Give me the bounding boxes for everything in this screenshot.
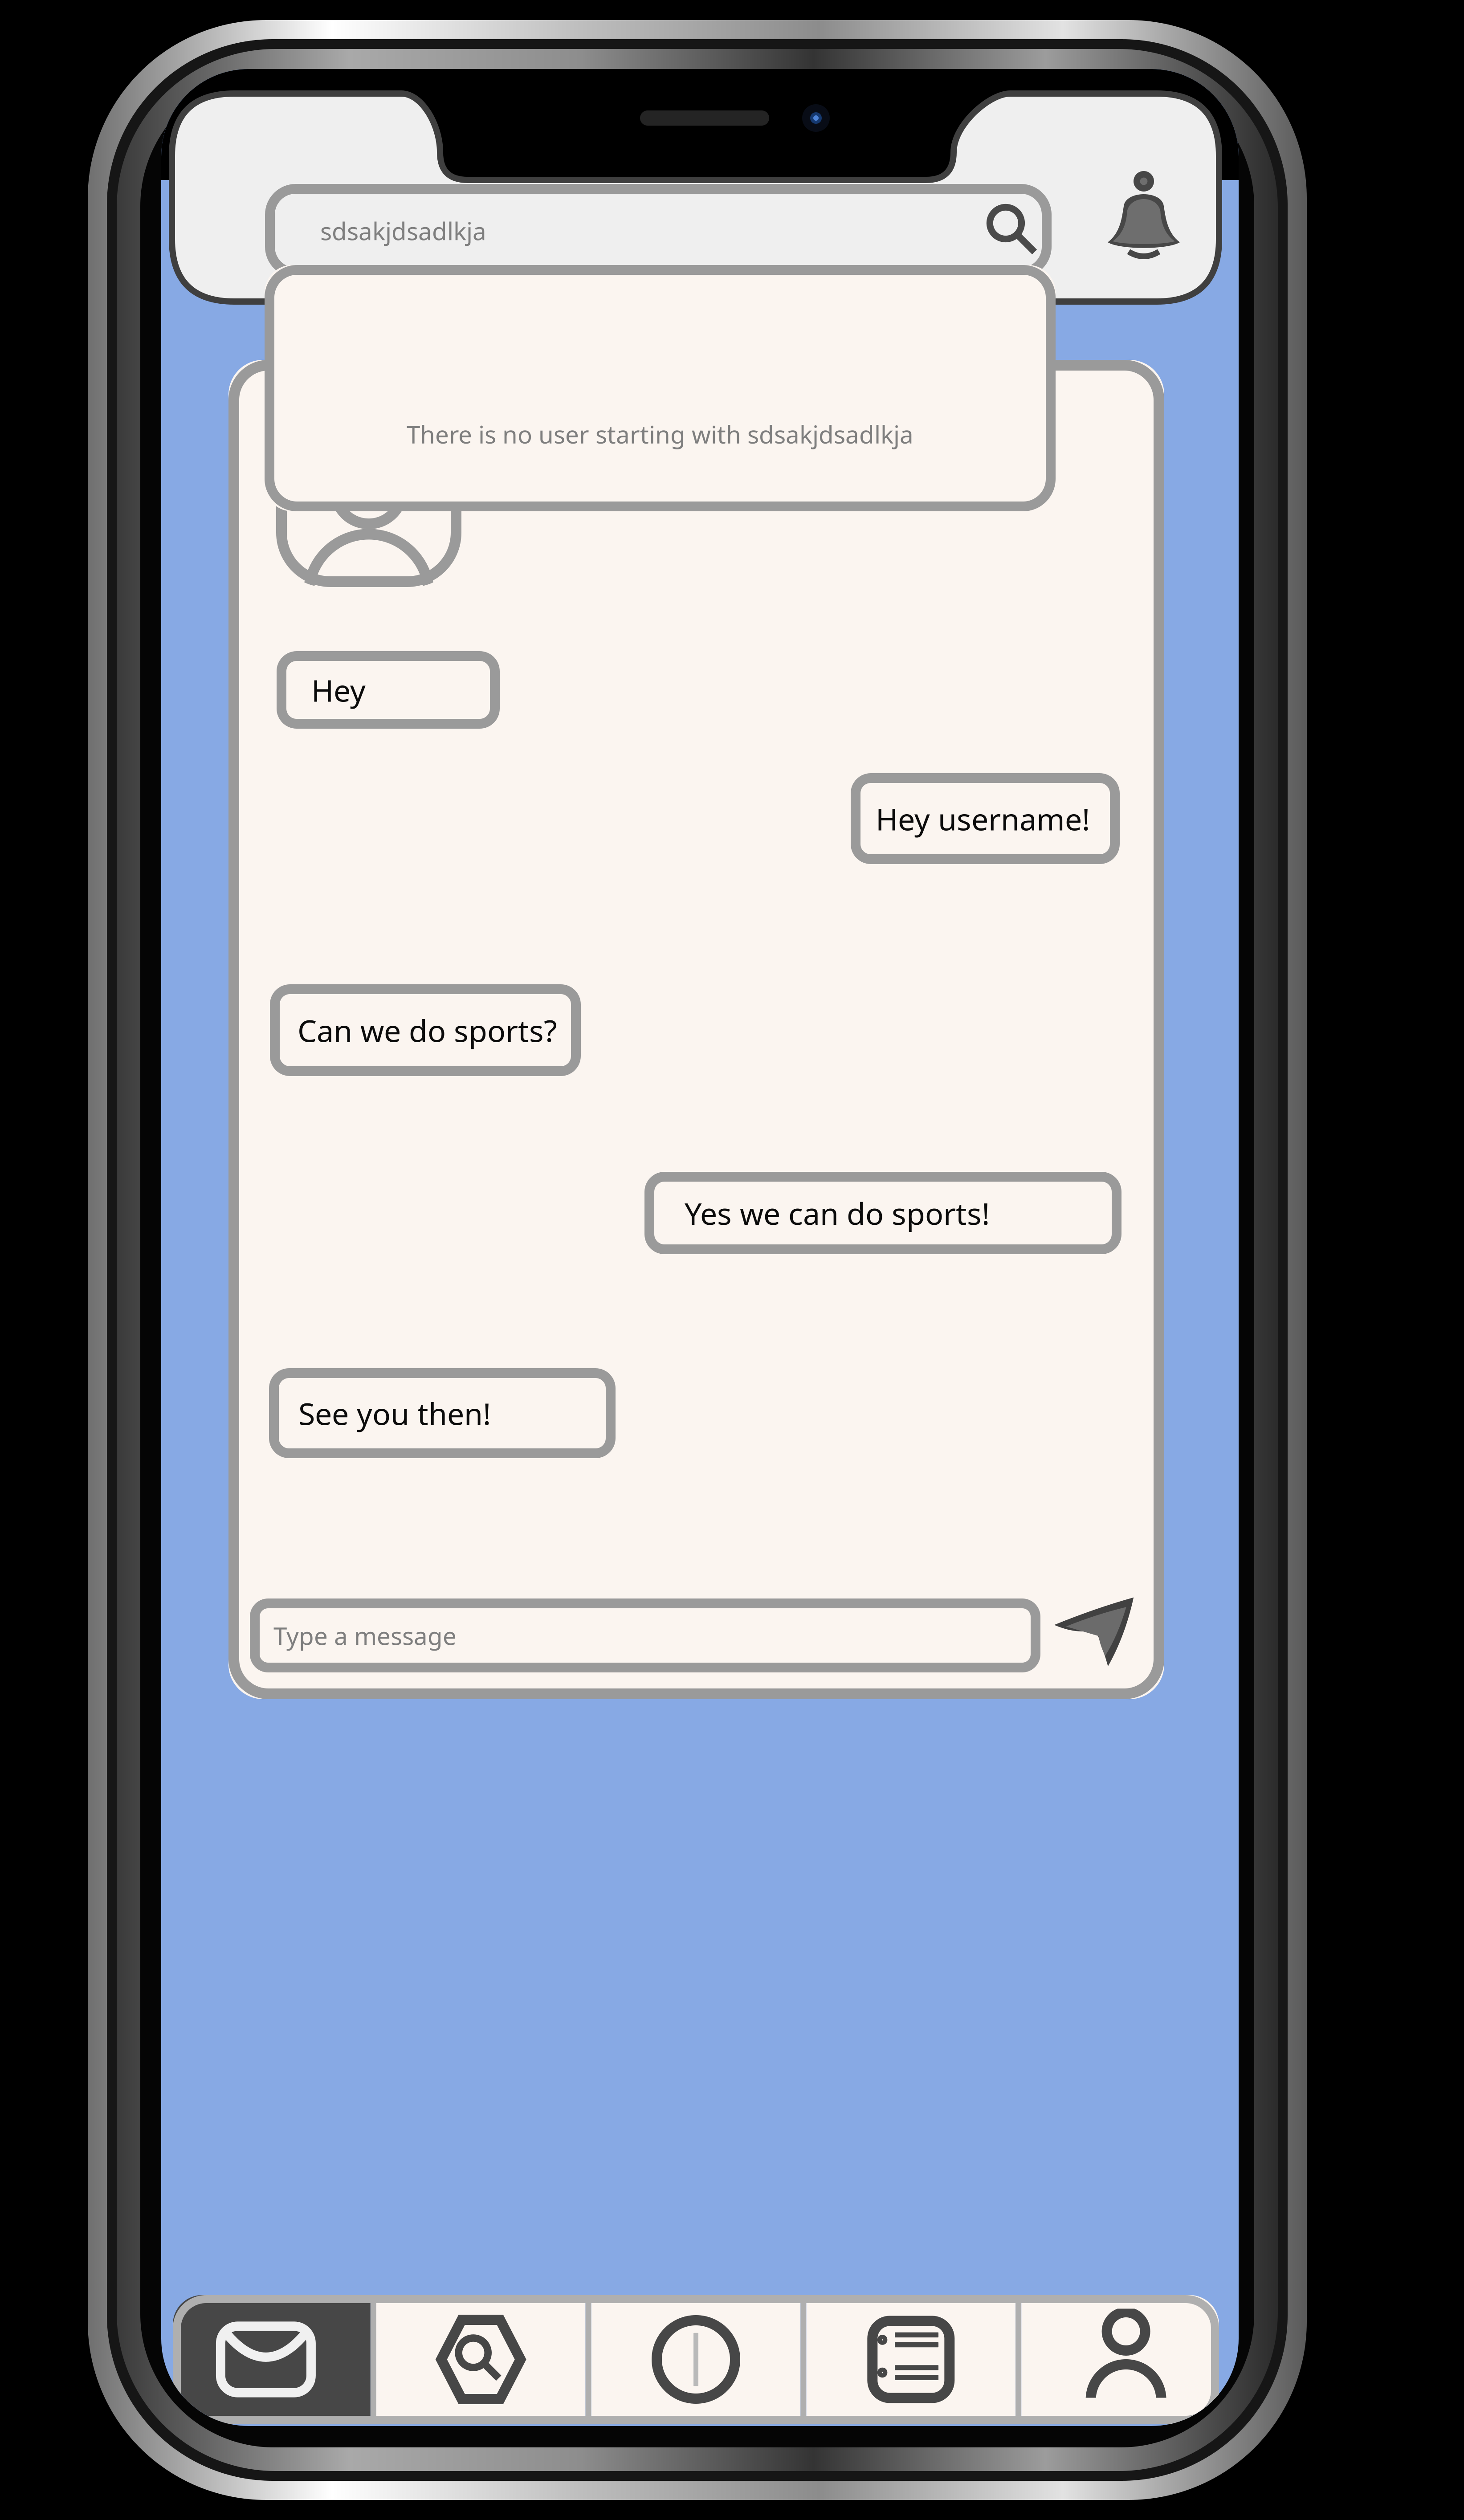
button[interactable]: Send bbox=[1051, 1594, 1138, 1669]
staticText: sdsakjdsadlkja bbox=[320, 215, 486, 247]
staticText: Type a message bbox=[273, 1619, 457, 1652]
button[interactable]: Lists bbox=[806, 2295, 1016, 2424]
staticText: username bbox=[490, 423, 637, 464]
button[interactable]: sdsakjdsadlkja bbox=[265, 184, 1052, 277]
staticText: Can we do sports? bbox=[298, 1010, 557, 1050]
button[interactable]: Messages bbox=[161, 2295, 370, 2424]
staticText: Yes we can do sports! bbox=[685, 1193, 990, 1233]
staticText: Hey username! bbox=[876, 798, 1090, 839]
button[interactable]: Search bbox=[376, 2295, 586, 2424]
button[interactable]: Notifications bbox=[1099, 171, 1188, 260]
button[interactable]: Type a message bbox=[250, 1598, 1040, 1672]
staticText: See you then! bbox=[298, 1393, 491, 1433]
staticText: There is no user starting with sdsakjdsa… bbox=[407, 418, 913, 450]
staticText: Hey bbox=[311, 670, 366, 710]
button[interactable]: Appearance bbox=[591, 2295, 801, 2424]
button[interactable]: Profile bbox=[1021, 2295, 1231, 2424]
